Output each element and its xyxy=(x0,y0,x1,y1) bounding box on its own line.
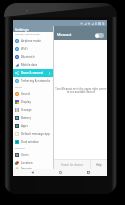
staticText: Wi-Fi xyxy=(21,47,28,51)
button[interactable]: Wi-Fi xyxy=(13,45,53,53)
staticText: WIRELESS AND NETWORKS xyxy=(15,33,41,36)
staticText: Location xyxy=(21,161,33,165)
staticText: Users xyxy=(21,153,29,157)
staticText: Dual window xyxy=(21,140,39,144)
staticText: Settings xyxy=(15,27,29,32)
button[interactable]: Tethering & networks xyxy=(13,77,53,85)
staticText: Search for devices xyxy=(61,163,84,167)
button[interactable]: Security xyxy=(13,167,53,169)
button[interactable]: Home xyxy=(51,169,69,176)
staticText: Mobile data xyxy=(21,63,38,67)
button[interactable]: Apps xyxy=(13,122,53,130)
staticText: Turn Miracast on in the upper right corn… xyxy=(55,87,107,93)
button[interactable]: Dual window xyxy=(13,138,53,146)
staticText: Apps xyxy=(21,124,28,128)
button[interactable]: Recents xyxy=(79,169,97,176)
staticText: Display xyxy=(21,100,31,104)
button[interactable]: Help xyxy=(91,160,107,169)
button[interactable]: Bluetooth xyxy=(13,53,53,61)
staticText: Sound xyxy=(21,92,30,96)
button[interactable]: Battery xyxy=(13,114,53,122)
button[interactable]: Miracast toggle xyxy=(95,33,104,38)
staticText: Help xyxy=(96,163,102,167)
staticText: Tethering & networks xyxy=(21,79,51,83)
button[interactable]: Sound xyxy=(13,90,53,98)
staticText: Airplane mode xyxy=(21,39,41,43)
button[interactable]: Share & connect xyxy=(13,69,53,77)
button[interactable]: Mobile data xyxy=(13,61,53,69)
staticText: Default message app xyxy=(21,132,50,136)
staticText: PERSONAL xyxy=(15,147,26,150)
staticText: Battery xyxy=(21,116,31,120)
button[interactable]: Default message app xyxy=(13,130,53,138)
staticText: DEVICE xyxy=(15,86,22,89)
button[interactable]: Display xyxy=(13,98,53,106)
button[interactable]: Back xyxy=(23,169,41,176)
staticText: Bluetooth xyxy=(21,55,35,59)
staticText: Storage xyxy=(21,108,32,112)
staticText: Share & connect xyxy=(21,71,44,75)
staticText: Security xyxy=(21,167,32,169)
button[interactable]: Search for devices xyxy=(54,160,90,169)
button[interactable]: Storage xyxy=(13,106,53,114)
button[interactable]: Users xyxy=(13,151,53,159)
staticText: Miracast xyxy=(57,32,72,37)
button[interactable]: Airplane mode xyxy=(13,37,53,45)
button[interactable]: Location xyxy=(13,159,53,167)
